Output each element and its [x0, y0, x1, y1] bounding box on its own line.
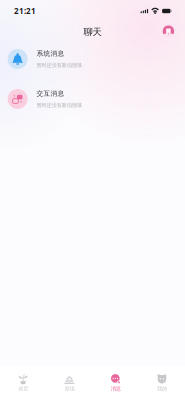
button[interactable]: 我的	[139, 366, 185, 400]
staticText: 发现	[64, 385, 74, 392]
button[interactable]: 首页	[0, 366, 46, 400]
staticText: 暂时还没有新消息哦	[37, 102, 82, 109]
button[interactable]: 消息	[92, 366, 139, 400]
staticText: 聊天	[83, 26, 101, 38]
button[interactable]: 发现	[46, 366, 92, 400]
staticText: 暂时还没有新消息哦	[37, 62, 82, 69]
button[interactable]: 系统消息	[0, 39, 185, 79]
staticText: 交互消息	[37, 89, 65, 98]
staticText: 21:21	[14, 6, 36, 16]
staticText: 我的	[157, 385, 167, 392]
button[interactable]: 交互消息	[0, 79, 185, 119]
button[interactable]: Profile	[161, 23, 175, 37]
staticText: 消息	[111, 385, 121, 392]
staticText: 系统消息	[37, 49, 65, 58]
staticText: 首页	[18, 385, 28, 392]
